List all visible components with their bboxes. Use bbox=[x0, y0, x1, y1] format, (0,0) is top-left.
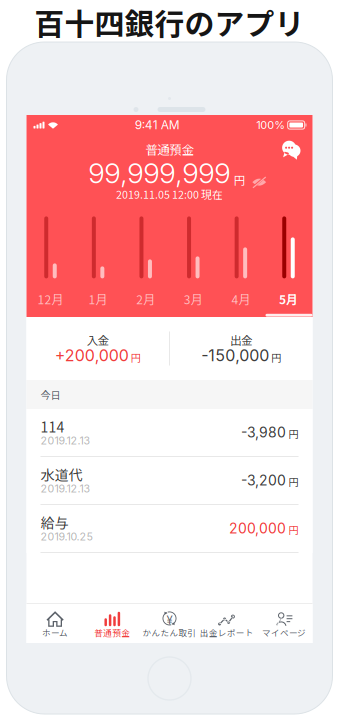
staticText: 100% bbox=[256, 118, 285, 132]
staticText: 114 bbox=[40, 416, 64, 437]
staticText: 普通預金 bbox=[145, 140, 193, 158]
staticText: 2019.12.13 bbox=[40, 434, 90, 447]
button[interactable]: 普通預金 bbox=[84, 604, 141, 643]
staticText: 円 bbox=[288, 474, 298, 489]
button[interactable]: 出金レポート bbox=[198, 604, 255, 643]
staticText: ホーム bbox=[42, 626, 68, 639]
staticText: 今日 bbox=[40, 387, 60, 402]
staticText: -3,200 bbox=[241, 472, 286, 489]
staticText: 円 bbox=[234, 171, 245, 188]
button[interactable]: 水道代 bbox=[26, 457, 312, 505]
staticText: +200,000 bbox=[55, 346, 129, 365]
staticText: 9:41 AM bbox=[135, 118, 180, 132]
staticText: 百十四銀行のアプリ bbox=[34, 0, 304, 44]
staticText: -150,000 bbox=[201, 346, 269, 365]
staticText: ¥ bbox=[166, 613, 172, 627]
staticText: 円 bbox=[271, 350, 281, 365]
staticText: 2019.12.13 bbox=[40, 482, 90, 495]
staticText: 円 bbox=[288, 426, 298, 441]
staticText: 200,000 bbox=[229, 520, 286, 537]
staticText: 円 bbox=[131, 350, 141, 365]
button[interactable]: ホーム bbox=[26, 604, 84, 643]
staticText: 給与 bbox=[40, 512, 68, 533]
staticText: 12月 bbox=[37, 290, 63, 308]
staticText: 99,999,999 bbox=[88, 156, 230, 190]
staticText: 4月 bbox=[231, 290, 250, 308]
staticText: -3,980 bbox=[241, 424, 286, 441]
staticText: 1月 bbox=[89, 290, 108, 308]
button[interactable]: 給与 bbox=[26, 505, 312, 553]
button[interactable]: マイページ bbox=[255, 604, 312, 643]
staticText: かんたん取引 bbox=[142, 626, 196, 639]
staticText: 入金 bbox=[87, 332, 109, 348]
button[interactable]: メッセージ bbox=[275, 134, 306, 165]
staticText: 出金 bbox=[230, 332, 252, 348]
staticText: 2月 bbox=[136, 290, 155, 308]
staticText: 円 bbox=[288, 522, 298, 537]
staticText: 普通預金 bbox=[94, 626, 130, 639]
staticText: 出金レポート bbox=[200, 626, 254, 639]
staticText: マイページ bbox=[262, 626, 306, 639]
staticText: 5月 bbox=[279, 290, 298, 308]
button[interactable]: 114 bbox=[26, 409, 312, 457]
staticText: 2019.11.05 12:00 現在 bbox=[116, 186, 223, 202]
staticText: 3月 bbox=[184, 290, 203, 308]
staticText: 水道代 bbox=[40, 464, 82, 485]
button[interactable]: ¥ bbox=[141, 604, 198, 643]
staticText: 2019.10.25 bbox=[40, 530, 92, 543]
